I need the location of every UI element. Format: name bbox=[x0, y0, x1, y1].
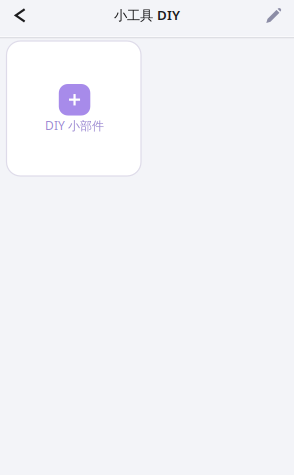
staticText: 小工具 DIY bbox=[114, 6, 180, 24]
button[interactable]: DIY 小部件 bbox=[6, 41, 141, 176]
button[interactable]: Edit bbox=[257, 0, 291, 31]
staticText: DIY 小部件 bbox=[45, 117, 104, 133]
button[interactable]: Back bbox=[3, 0, 37, 30]
